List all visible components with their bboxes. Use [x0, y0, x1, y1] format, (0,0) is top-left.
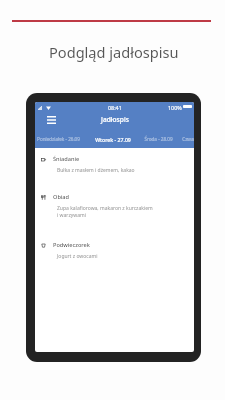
- button[interactable]: Środa - 28.09: [140, 130, 177, 148]
- staticText: 100%: [168, 104, 182, 111]
- staticText: Obiad: [53, 193, 70, 201]
- button[interactable]: Podwieczorek: [35, 241, 194, 256]
- staticText: Poniedziałek - 26.09: [37, 136, 80, 142]
- staticText: Jogurt z owocami: [57, 253, 98, 260]
- button[interactable]: Obiad: [35, 193, 194, 215]
- button[interactable]: Poniedziałek - 26.09: [35, 130, 85, 148]
- staticText: Jadłospis: [101, 115, 129, 124]
- button[interactable]: Śniadanie: [35, 155, 194, 170]
- staticText: Wtorek - 27.09: [95, 136, 131, 143]
- staticText: Czwartek - 29.09: [182, 136, 194, 142]
- staticText: Bułka z masłem i dżemem, kakao: [57, 167, 135, 174]
- staticText: Podgląd jadłospisu: [49, 42, 179, 62]
- button[interactable]: Czwartek - 29.09: [180, 130, 194, 148]
- staticText: Podwieczorek: [53, 241, 90, 249]
- staticText: 08:41: [108, 104, 122, 111]
- staticText: Środa - 28.09: [144, 136, 173, 142]
- button[interactable]: Menu: [44, 113, 58, 127]
- staticText: i warzywami: [57, 212, 86, 219]
- staticText: Śniadanie: [53, 155, 80, 163]
- button[interactable]: Wtorek - 27.09: [91, 130, 134, 148]
- staticText: Zupa kalafiorowa, makaron z kurczakiem: [57, 205, 153, 212]
